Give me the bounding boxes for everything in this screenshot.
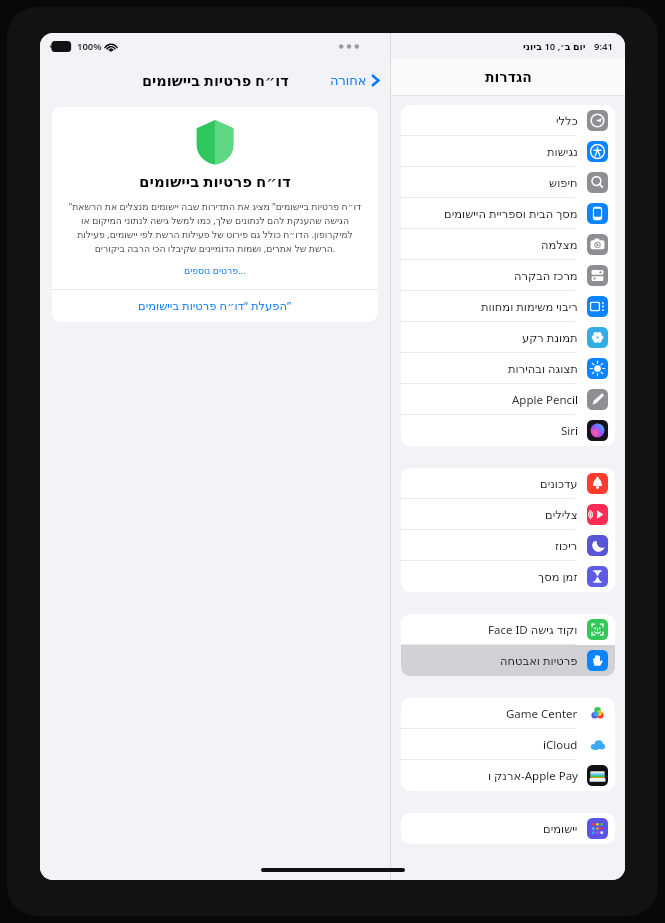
staticText: מרכז הבקרה: [514, 268, 578, 284]
staticText: תמונת רקע: [522, 330, 578, 346]
button[interactable]: הפעלת “דו״ח פרטיות ביישומים”: [52, 290, 378, 322]
button[interactable]: עדכונים: [401, 468, 615, 499]
staticText: דו״ח פרטיות ביישומים: [139, 171, 291, 191]
button[interactable]: זמן מסך: [401, 561, 615, 592]
staticText: “דו״ח פרטיות ביישומים” מציג את התדירות ש…: [68, 200, 362, 255]
staticText: Face ID וקוד גישה: [488, 622, 578, 638]
staticText: הפעלת “דו״ח פרטיות ביישומים”: [138, 298, 292, 314]
staticText: פרטים נוספים...: [184, 264, 246, 277]
staticText: יישומים: [543, 822, 578, 835]
staticText: עדכונים: [540, 477, 578, 490]
staticText: נגישות: [547, 145, 578, 158]
staticText: תצוגה ובהירות: [508, 361, 578, 377]
button[interactable]: נגישות: [401, 136, 615, 167]
button[interactable]: פרטים נוספים...: [184, 264, 246, 277]
staticText: זמן מסך: [538, 569, 578, 585]
button[interactable]: מסך הבית וספריית היישומים: [401, 198, 615, 229]
staticText: הגדרות: [485, 69, 532, 85]
staticText: iCloud: [543, 737, 578, 753]
staticText: 100%: [77, 40, 102, 53]
staticText: חיפוש: [549, 176, 578, 189]
button[interactable]: כללי: [401, 105, 615, 136]
button[interactable]: Apple Pencil: [401, 384, 615, 415]
staticText: ריבוי משימות ומחוות: [481, 299, 578, 315]
staticText: דו״ח פרטיות ביישומים: [142, 70, 289, 90]
staticText: פרטיות ואבטחה: [500, 653, 578, 669]
button[interactable]: ריכוז: [401, 530, 615, 561]
staticText: צלילים: [545, 508, 578, 521]
staticText: מצלמה: [541, 238, 578, 251]
button[interactable]: פרטיות ואבטחה: [401, 645, 615, 676]
staticText: מסך הבית וספריית היישומים: [444, 206, 578, 222]
button[interactable]: iCloud: [401, 729, 615, 760]
staticText: ארנק ו-Apple Pay: [488, 768, 578, 784]
staticText: כללי: [556, 114, 578, 127]
button[interactable]: יישומים: [401, 813, 615, 844]
staticText: ריכוז: [555, 539, 578, 552]
button[interactable]: תצוגה ובהירות: [401, 353, 615, 384]
button[interactable]: Game Center: [401, 698, 615, 729]
staticText: 9:41: [594, 40, 613, 53]
staticText: יום ב׳, 10 ביוני: [523, 40, 586, 53]
staticText: Apple Pencil: [512, 392, 578, 408]
button[interactable]: תמונת רקע: [401, 322, 615, 353]
staticText: אחורה: [330, 73, 367, 88]
staticText: Siri: [561, 423, 578, 439]
button[interactable]: ריבוי משימות ומחוות: [401, 291, 615, 322]
button[interactable]: חיפוש: [401, 167, 615, 198]
button[interactable]: Siri: [401, 415, 615, 446]
button[interactable]: More options: [336, 38, 362, 54]
staticText: Game Center: [506, 706, 578, 722]
button[interactable]: ארנק ו-Apple Pay: [401, 760, 615, 791]
button[interactable]: Face ID וקוד גישה: [401, 614, 615, 645]
button[interactable]: מרכז הבקרה: [401, 260, 615, 291]
button[interactable]: צלילים: [401, 499, 615, 530]
button[interactable]: אחורה: [330, 73, 380, 88]
button[interactable]: מצלמה: [401, 229, 615, 260]
